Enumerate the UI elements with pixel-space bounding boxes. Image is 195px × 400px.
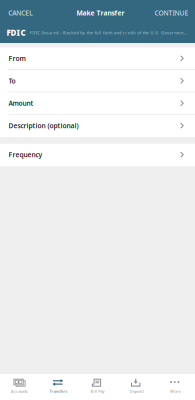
button[interactable]: Amount	[0, 92, 195, 115]
staticText: CONTINUE	[154, 8, 188, 17]
staticText: CANCEL	[8, 8, 33, 17]
button[interactable]: CONTINUE	[141, 0, 195, 26]
staticText: Transfers	[49, 388, 68, 394]
staticText: Bill Pay	[90, 388, 105, 394]
button[interactable]: Description (optional)	[0, 115, 195, 137]
staticText: To	[8, 76, 15, 85]
staticText: FDIC	[6, 27, 25, 38]
button[interactable]: From	[0, 47, 195, 70]
button[interactable]: Bill Pay	[78, 374, 117, 400]
staticText: FDIC-Insured - Backed by the full faith …	[30, 30, 187, 35]
button[interactable]: Deposit	[117, 374, 156, 400]
button[interactable]: More	[156, 374, 195, 400]
button[interactable]: Frequency	[0, 144, 195, 166]
staticText: From	[8, 54, 25, 63]
staticText: Frequency	[8, 150, 42, 159]
staticText: Accounts	[11, 388, 28, 394]
button[interactable]: CANCEL	[0, 0, 54, 26]
button[interactable]: Transfers	[39, 374, 78, 400]
staticText: Deposit	[129, 388, 143, 394]
staticText: Amount	[8, 99, 33, 108]
button[interactable]: To	[0, 70, 195, 92]
staticText: Description (optional)	[8, 121, 78, 130]
staticText: Make Transfer	[76, 8, 124, 17]
button[interactable]: Accounts	[0, 374, 39, 400]
staticText: More	[170, 388, 181, 394]
